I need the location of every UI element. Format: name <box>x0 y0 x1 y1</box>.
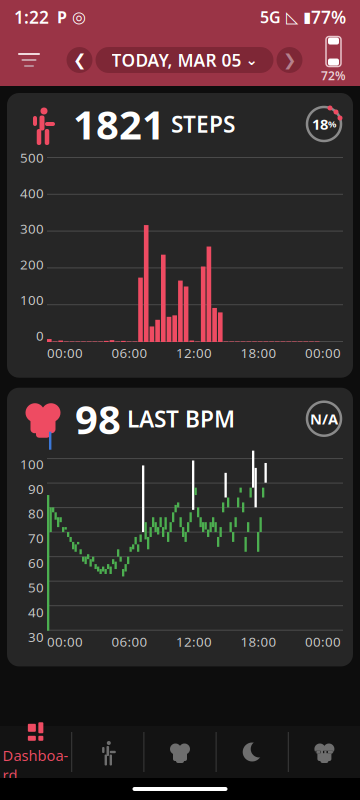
staticText: 00:00 <box>47 633 83 650</box>
staticText: 60 <box>28 554 44 572</box>
staticText: 100 <box>20 291 44 309</box>
staticText: 200 <box>20 255 44 273</box>
button[interactable]: Health <box>289 726 360 778</box>
staticText: 30 <box>28 628 44 646</box>
staticText: P <box>49 6 67 28</box>
staticText: 77% <box>311 5 346 28</box>
staticText: 12:00 <box>176 344 212 362</box>
button[interactable]: Activity <box>72 726 143 778</box>
staticText: 18 <box>312 114 328 134</box>
staticText: 98 <box>75 392 121 445</box>
staticText: STEPS <box>165 109 235 139</box>
button[interactable]: Sleep <box>217 726 288 778</box>
staticText: 50 <box>28 578 44 596</box>
button[interactable]: Previous day <box>66 47 92 73</box>
staticText: 90 <box>28 480 44 498</box>
staticText: TODAY, MAR 05 <box>111 48 241 71</box>
staticText: LAST BPM <box>121 404 235 434</box>
staticText: ▮ <box>298 9 311 25</box>
staticText: 00:00 <box>47 344 83 362</box>
staticText: ◺ <box>281 8 298 26</box>
staticText: 00:00 <box>305 633 341 650</box>
staticText: 18:00 <box>240 344 276 362</box>
staticText: 06:00 <box>111 344 147 362</box>
staticText: ❮ <box>73 51 86 69</box>
staticText: 5G <box>260 6 281 28</box>
staticText: 300 <box>20 220 44 237</box>
button[interactable]: TODAY, MAR 05 <box>95 47 273 73</box>
button[interactable]: 98 <box>7 388 353 666</box>
staticText: ⌄ <box>245 52 257 68</box>
staticText: 12:00 <box>176 633 212 650</box>
button[interactable]: Watch battery 72 percent <box>315 36 352 83</box>
staticText: Dashboard <box>3 745 69 784</box>
button[interactable]: Next day <box>276 47 302 73</box>
staticText: N/A <box>310 409 338 428</box>
staticText: 1:22 <box>14 5 49 28</box>
staticText: 70 <box>28 529 44 547</box>
button[interactable]: Menu <box>8 43 54 77</box>
staticText: 80 <box>28 504 44 522</box>
staticText: 0 <box>36 327 44 344</box>
staticText: 100 <box>20 455 44 473</box>
staticText: 500 <box>20 149 44 166</box>
button[interactable]: Heart rate <box>144 726 216 778</box>
staticText: 06:00 <box>111 633 147 650</box>
staticText: 00:00 <box>305 344 341 362</box>
button[interactable]: 1821 <box>7 93 353 378</box>
staticText: ❯ <box>283 51 296 69</box>
staticText: % <box>328 118 336 130</box>
staticText: 1821 <box>73 97 165 150</box>
staticText: 18:00 <box>240 633 276 650</box>
staticText: ◎ <box>67 8 86 26</box>
staticText: 72% <box>321 67 346 83</box>
button[interactable]: Dashboard <box>0 726 71 778</box>
staticText: 400 <box>20 184 44 202</box>
staticText: 40 <box>28 603 44 621</box>
